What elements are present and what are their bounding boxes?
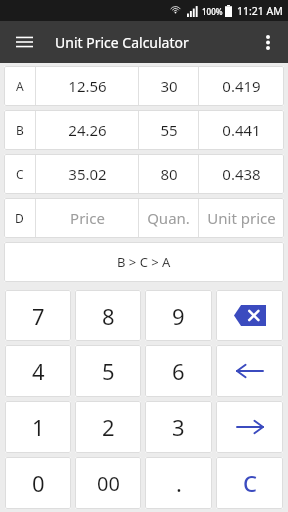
button[interactable]: Move left	[216, 345, 283, 397]
staticText: C	[16, 166, 24, 182]
staticText: 8	[102, 301, 115, 331]
staticText: C	[243, 468, 257, 498]
staticText: 2	[102, 412, 115, 442]
staticText: 00	[97, 470, 120, 497]
button[interactable]: .	[145, 457, 212, 509]
button[interactable]: 00	[75, 457, 141, 509]
button[interactable]: 7	[5, 290, 71, 341]
staticText: Quan.	[147, 208, 190, 228]
button[interactable]: D	[4, 198, 284, 238]
staticText: B > C > A	[117, 253, 171, 271]
button[interactable]: 3	[145, 401, 212, 453]
staticText: B	[16, 122, 24, 138]
staticText: 3	[172, 412, 185, 442]
staticText: D	[15, 210, 24, 226]
staticText: 11:21 AM	[237, 4, 283, 18]
staticText: 6	[172, 356, 185, 386]
staticText: 7	[32, 301, 45, 331]
button[interactable]: 1	[5, 401, 71, 453]
staticText: 9	[172, 301, 185, 331]
button[interactable]: A	[4, 66, 284, 106]
staticText: 5	[102, 356, 115, 386]
button[interactable]: 9	[145, 290, 212, 341]
staticText: 4	[32, 356, 45, 386]
staticText: 35.02	[68, 164, 107, 184]
button[interactable]: B	[4, 110, 284, 150]
button[interactable]: 4	[5, 345, 71, 397]
button[interactable]: C	[216, 457, 283, 509]
staticText: 30	[160, 76, 178, 96]
staticText: Unit Price Calculator	[55, 33, 189, 52]
staticText: 24.26	[68, 120, 107, 140]
button[interactable]: B > C > A	[4, 242, 284, 282]
staticText: 12.56	[68, 76, 107, 96]
staticText: 80	[160, 164, 178, 184]
button[interactable]: C	[4, 154, 284, 194]
button[interactable]: Backspace	[216, 290, 283, 341]
button[interactable]: Open navigation menu	[8, 26, 40, 58]
staticText: A	[16, 78, 24, 94]
staticText: 100%	[202, 6, 223, 17]
button[interactable]: 8	[75, 290, 141, 341]
button[interactable]: 0	[5, 457, 71, 509]
button[interactable]: 2	[75, 401, 141, 453]
staticText: 1	[32, 412, 45, 442]
staticText: Price	[70, 208, 105, 228]
staticText: 0	[32, 468, 45, 498]
button[interactable]: Move right	[216, 401, 283, 453]
staticText: 0.419	[222, 76, 261, 96]
button[interactable]: 5	[75, 345, 141, 397]
staticText: 55	[160, 120, 178, 140]
staticText: Unit price	[207, 208, 276, 228]
staticText: .	[176, 468, 182, 498]
button[interactable]: 6	[145, 345, 212, 397]
staticText: 0.441	[222, 120, 261, 140]
button[interactable]: More options	[252, 26, 284, 58]
staticText: 0.438	[222, 164, 261, 184]
